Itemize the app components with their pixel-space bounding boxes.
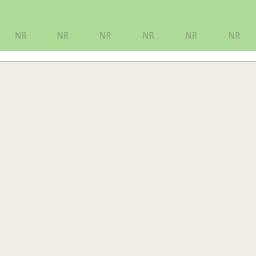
staticText: NR	[127, 30, 170, 41]
button[interactable]: NR	[0, 0, 42, 50]
button[interactable]: NR	[84, 0, 127, 50]
staticText: NR	[213, 30, 256, 41]
staticText: NR	[42, 30, 84, 41]
staticText: NR	[170, 30, 213, 41]
staticText: NR	[84, 30, 127, 41]
button[interactable]: NR	[42, 0, 84, 50]
button[interactable]: NR	[213, 0, 256, 50]
staticText: NR	[0, 30, 42, 41]
button[interactable]: NR	[127, 0, 170, 50]
button[interactable]: NR	[170, 0, 213, 50]
